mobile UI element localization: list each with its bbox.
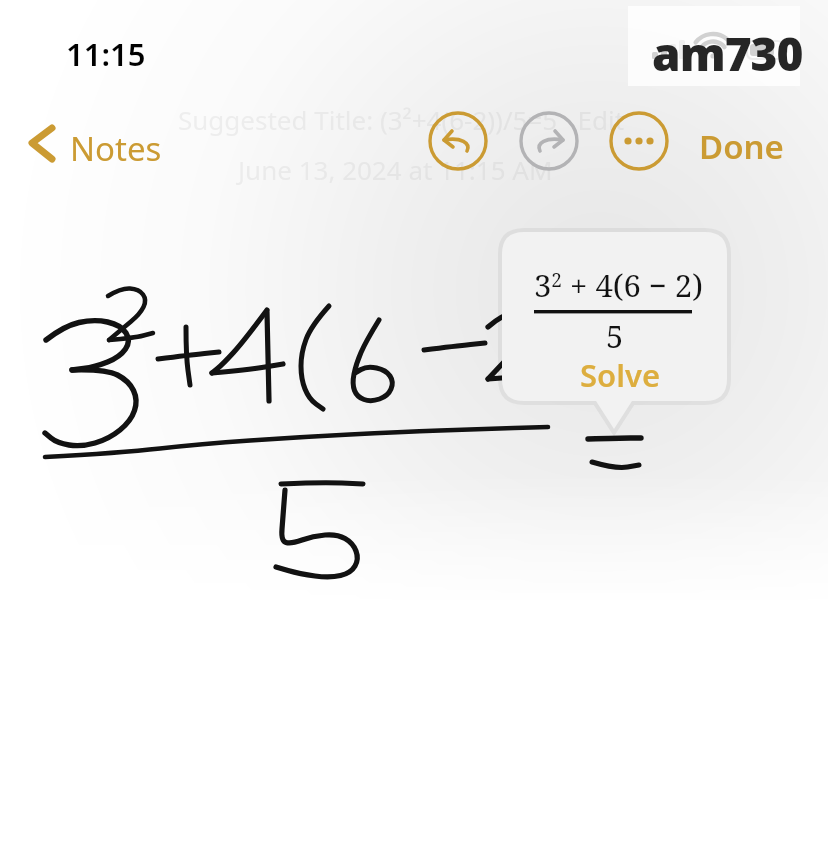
staticText: 32 + 4(6 − 2)	[534, 264, 703, 306]
button[interactable]: 32 + 4(6 − 2)	[496, 226, 738, 426]
staticText: 11:15	[66, 33, 146, 75]
staticText: Suggested Title: (3²+4(6-2))/5=5 Edit	[178, 102, 625, 137]
button[interactable]: Notes	[18, 112, 198, 174]
button[interactable]: Redo	[518, 110, 580, 172]
staticText: Solve	[580, 354, 661, 396]
staticText: Done	[699, 124, 784, 169]
staticText: Notes	[70, 126, 162, 171]
staticText: June 13, 2024 at 11:15 AM	[238, 152, 553, 187]
staticText: am730	[652, 22, 803, 85]
staticText: 5	[606, 315, 624, 357]
button[interactable]: Done	[695, 112, 805, 172]
button[interactable]: Undo	[427, 110, 489, 172]
button[interactable]: More options	[608, 110, 670, 172]
